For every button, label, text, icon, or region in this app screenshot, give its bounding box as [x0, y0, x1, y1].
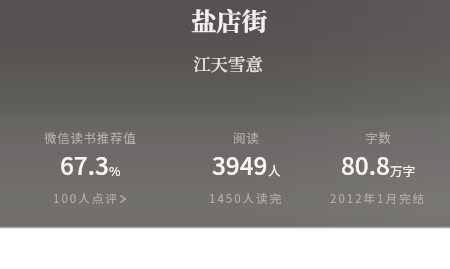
staticText: 阅读	[233, 128, 260, 146]
staticText: 微信读书推荐值	[44, 128, 137, 146]
staticText: 万字	[390, 161, 416, 179]
staticText: 盐店街	[4, 2, 450, 39]
staticText: %	[109, 161, 121, 179]
staticText: 67.3	[60, 147, 109, 182]
staticText: 人	[268, 161, 281, 179]
button[interactable]: 阅读	[180, 128, 312, 207]
staticText: 2012年1月完结	[330, 190, 426, 207]
staticText: 字数	[365, 128, 392, 146]
button[interactable]: 微信读书推荐值	[0, 128, 180, 207]
staticText: 1450人读完	[209, 190, 284, 207]
button[interactable]: 字数	[312, 128, 444, 207]
staticText: 80.8	[341, 147, 390, 182]
staticText: 江天雪意	[3, 51, 450, 76]
staticText: 100人点评	[53, 190, 119, 207]
staticText: 3949	[212, 147, 268, 182]
other: 查看点评	[119, 194, 127, 204]
